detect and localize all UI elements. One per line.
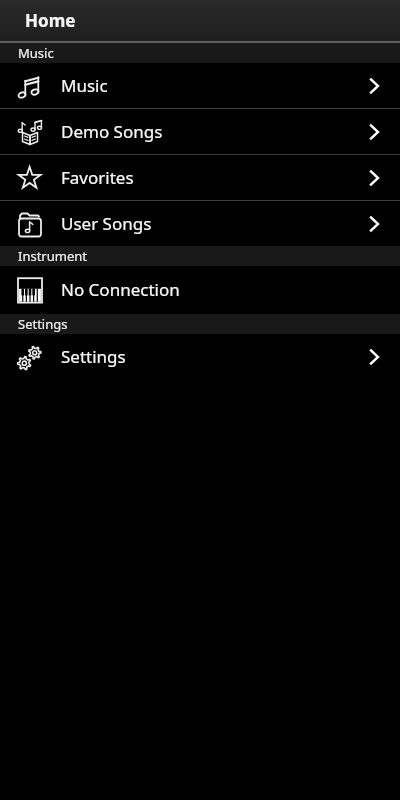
staticText: Music [18,44,54,62]
staticText: Demo Songs [61,120,163,143]
button[interactable]: Settings [0,334,400,379]
staticText: Favorites [61,166,134,189]
button[interactable]: User Songs [0,201,400,246]
staticText: User Songs [61,212,152,235]
staticText: Home [25,9,76,32]
staticText: Settings [18,315,68,333]
button[interactable]: Demo Songs [0,109,400,154]
button[interactable]: Favorites [0,155,400,200]
button[interactable]: Music [0,63,400,108]
staticText: Instrument [18,247,87,265]
button[interactable]: No Connection [0,266,400,312]
staticText: Music [61,74,108,97]
staticText: Settings [61,345,126,368]
staticText: No Connection [61,278,180,301]
